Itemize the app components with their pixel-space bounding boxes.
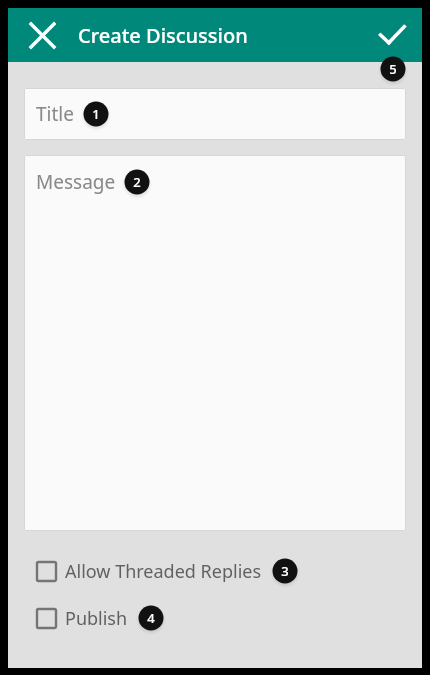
staticText: Title	[36, 101, 74, 127]
button[interactable]: Allow Threaded Replies	[8, 549, 300, 593]
staticText: Create Discussion	[78, 22, 248, 49]
staticText: 1	[92, 105, 100, 123]
staticText: Publish	[65, 606, 128, 631]
staticText: Message	[36, 169, 116, 195]
staticText: 2	[133, 173, 141, 191]
staticText: 5	[389, 60, 397, 78]
staticText: 3	[281, 562, 289, 580]
button[interactable]: Save	[370, 13, 414, 57]
staticText: Allow Threaded Replies	[65, 559, 262, 584]
button[interactable]: Close	[20, 13, 64, 57]
button[interactable]: Publish	[8, 596, 166, 640]
staticText: 4	[147, 609, 155, 627]
button[interactable]: Message	[24, 155, 406, 531]
button[interactable]: Title	[24, 88, 406, 140]
